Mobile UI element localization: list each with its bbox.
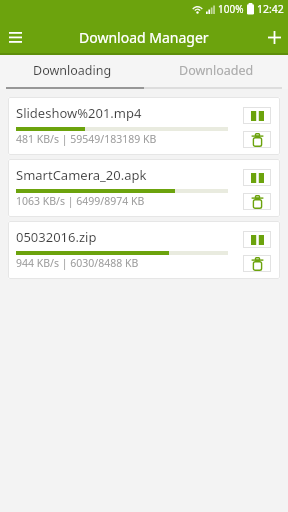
staticText: 05032016.zip	[16, 228, 97, 246]
button[interactable]	[243, 193, 271, 210]
button[interactable]	[243, 131, 271, 148]
button[interactable]	[243, 107, 271, 124]
staticText: 481 KB/s | 59549/183189 KB	[16, 132, 157, 146]
staticText: 100%	[218, 2, 244, 15]
button[interactable]	[243, 169, 271, 186]
staticText: SmartCamera_20.apk	[16, 166, 147, 184]
staticText: Download Manager	[79, 28, 209, 47]
button[interactable]: Downloading	[0, 55, 144, 89]
button[interactable]	[243, 231, 271, 248]
button[interactable]: Slideshow%201.mp4	[8, 97, 280, 155]
staticText: Slideshow%201.mp4	[16, 104, 142, 122]
staticText: 12:42	[257, 2, 284, 15]
staticText: Downloaded	[179, 62, 254, 79]
button[interactable]	[3, 25, 27, 49]
button[interactable]	[243, 255, 271, 272]
button[interactable]: Downloaded	[144, 55, 288, 89]
staticText: 1063 KB/s | 6499/8974 KB	[16, 194, 145, 208]
staticText: 944 KB/s | 6030/8488 KB	[16, 256, 139, 270]
button[interactable]	[262, 25, 286, 49]
staticText: Downloading	[33, 62, 112, 79]
button[interactable]: SmartCamera_20.apk	[8, 159, 280, 217]
button[interactable]: 05032016.zip	[8, 221, 280, 279]
